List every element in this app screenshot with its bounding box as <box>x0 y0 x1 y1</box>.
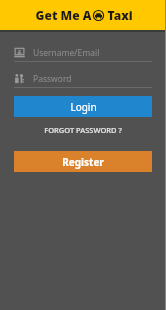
staticText: FORGOT PASSWORD ? <box>44 125 122 135</box>
staticText: Taxi <box>104 7 133 23</box>
other: Taxi logo <box>93 10 104 21</box>
other: Username <box>14 47 25 58</box>
button[interactable]: Login <box>14 96 152 117</box>
staticText: Username/Email <box>33 47 100 59</box>
button[interactable]: FORGOT PASSWORD ? <box>14 117 152 143</box>
button[interactable]: Username <box>14 44 152 62</box>
staticText: Register <box>62 155 104 169</box>
other: Password <box>14 73 25 84</box>
staticText: Get Me A <box>34 7 93 23</box>
button[interactable]: Register <box>14 151 152 172</box>
button[interactable]: Password <box>14 70 152 88</box>
staticText: Login <box>70 100 97 114</box>
staticText: Password <box>33 73 72 85</box>
